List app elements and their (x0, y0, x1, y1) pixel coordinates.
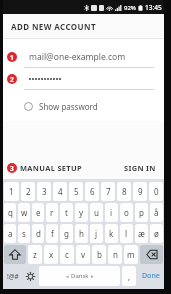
staticText: h (79, 228, 84, 239)
button[interactable]: o (120, 203, 133, 222)
staticText: m (127, 249, 135, 260)
staticText: 8 (122, 186, 127, 197)
staticText: w (21, 207, 28, 218)
button[interactable]: 8 (117, 182, 131, 201)
staticText: 6 (90, 186, 95, 197)
button[interactable]: j (90, 224, 103, 243)
button[interactable]: e (32, 203, 44, 222)
staticText: r (50, 207, 54, 218)
staticText: 5 (74, 186, 79, 197)
button[interactable]: l (120, 224, 133, 243)
staticText: 4 (58, 186, 63, 197)
button[interactable]: 4 (53, 182, 67, 201)
button[interactable]: b (92, 245, 106, 264)
staticText: 3 (42, 186, 47, 197)
button[interactable]: Space (39, 266, 120, 286)
staticText: e (36, 207, 41, 218)
button[interactable]: Done (138, 266, 163, 286)
button[interactable] (3, 68, 164, 90)
button[interactable]: 7 (101, 182, 115, 201)
button[interactable]: z (28, 245, 42, 264)
staticText: 2 (10, 75, 14, 84)
staticText: ADD NEW ACCOUNT (11, 21, 96, 32)
staticText: n (113, 249, 118, 260)
button[interactable]: n (108, 245, 122, 264)
staticText: g (64, 228, 69, 239)
staticText: , (128, 271, 131, 282)
button[interactable]: w (18, 203, 30, 222)
staticText: l (125, 228, 128, 239)
staticText: v (81, 249, 86, 260)
staticText: Show password (39, 101, 98, 112)
staticText: 1 (9, 186, 14, 197)
button[interactable]: f (46, 224, 58, 243)
staticText: a (8, 228, 13, 239)
staticText: 3 (10, 164, 14, 173)
staticText: y (79, 207, 84, 218)
button[interactable]: k (105, 224, 118, 243)
staticText: 9 (138, 186, 143, 197)
staticText: q (8, 207, 13, 218)
staticText: Dansk (71, 272, 89, 280)
staticText: 13:45 (145, 3, 162, 12)
button[interactable]: y (75, 203, 88, 222)
button[interactable]: a (4, 224, 16, 243)
staticText: c (65, 249, 69, 260)
staticText: k (109, 228, 114, 239)
button[interactable]: 5 (69, 182, 83, 201)
button[interactable]: 1 (4, 182, 19, 201)
button[interactable]: !@# (4, 266, 21, 286)
button[interactable]: i (105, 203, 118, 222)
staticText: i (110, 207, 113, 218)
staticText: 1 (10, 53, 14, 62)
button[interactable]: 2 (21, 182, 35, 201)
button[interactable]: Shift (4, 245, 26, 264)
button[interactable]: s (18, 224, 30, 243)
staticText: x (49, 249, 54, 260)
staticText: t (65, 207, 68, 218)
button[interactable]: ø (150, 224, 163, 243)
staticText: 7 (106, 186, 111, 197)
staticText: ø (154, 228, 159, 239)
button[interactable]: u (90, 203, 103, 222)
button[interactable]: 3 (37, 182, 51, 201)
button[interactable]: 3 (3, 163, 88, 173)
button[interactable]: Keyboard settings (23, 266, 37, 286)
button[interactable]: 9 (133, 182, 147, 201)
button[interactable]: 6 (85, 182, 99, 201)
staticText: Done (142, 271, 160, 281)
staticText: s (22, 228, 26, 239)
button[interactable]: x (44, 245, 58, 264)
staticText: 92% (124, 4, 136, 12)
staticText: j (95, 228, 98, 239)
button[interactable]: , (122, 266, 136, 286)
button[interactable]: 0 (149, 182, 163, 201)
staticText: p (139, 207, 144, 218)
button[interactable]: Backspace (140, 245, 163, 264)
staticText: æ (138, 228, 145, 239)
button[interactable]: å (150, 203, 163, 222)
button[interactable]: r (46, 203, 58, 222)
staticText: å (154, 207, 159, 218)
staticText: 0 (154, 186, 159, 197)
staticText: b (97, 249, 102, 260)
button[interactable]: g (60, 224, 73, 243)
button[interactable]: mail@one-example.com (3, 46, 164, 68)
button[interactable]: t (60, 203, 73, 222)
staticText: u (94, 207, 99, 218)
button[interactable]: q (4, 203, 16, 222)
staticText: d (36, 228, 41, 239)
staticText: MANUAL SETUP (20, 163, 82, 173)
button[interactable]: SIGN IN (116, 159, 164, 177)
button[interactable]: d (32, 224, 44, 243)
staticText: f (51, 228, 54, 239)
button[interactable]: h (75, 224, 88, 243)
button[interactable]: m (124, 245, 138, 264)
staticText: 2 (26, 186, 31, 197)
button[interactable]: æ (135, 224, 148, 243)
button[interactable]: v (76, 245, 90, 264)
button[interactable]: p (135, 203, 148, 222)
button[interactable]: c (60, 245, 74, 264)
staticText: o (124, 207, 129, 218)
button[interactable]: Show password (3, 95, 164, 117)
